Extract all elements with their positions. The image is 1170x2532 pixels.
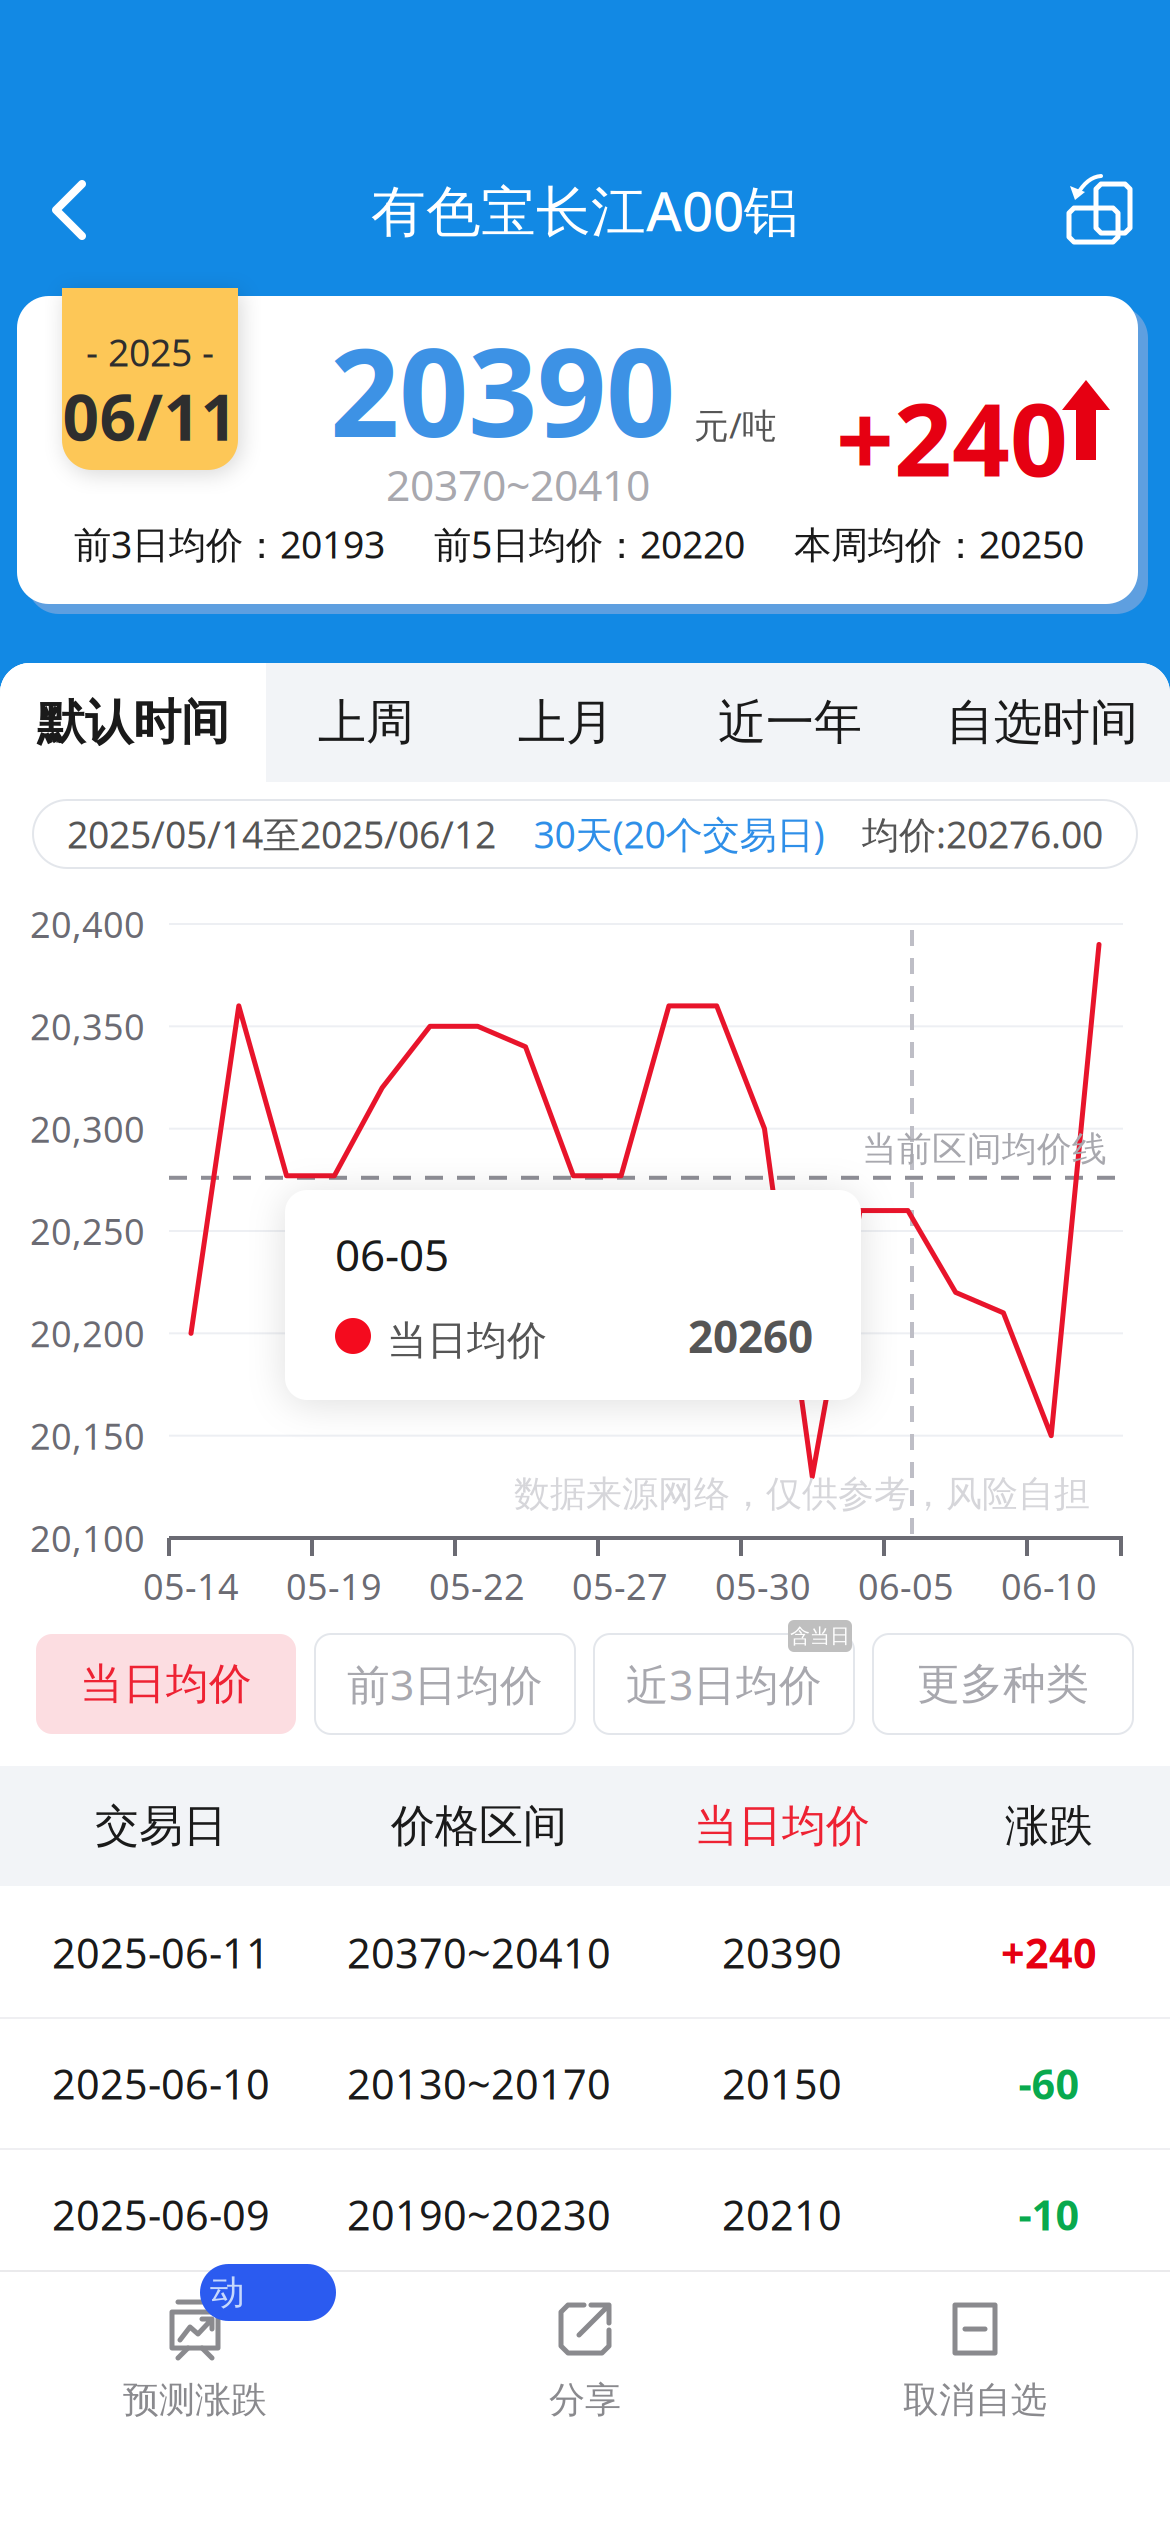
button[interactable]: 近一年: [666, 663, 914, 782]
staticText: 2025/05/14至2025/06/12: [67, 809, 496, 859]
staticText: 20150: [722, 2056, 842, 2111]
staticText: 默认时间: [37, 693, 229, 752]
staticText: 当日均价: [387, 1316, 547, 1365]
staticText: 05-30: [715, 1562, 811, 1610]
staticText: 涨跌: [1005, 1799, 1093, 1853]
staticText: 当日均价: [80, 1658, 252, 1710]
staticText: 20370~20410: [386, 456, 650, 513]
staticText: 有色宝长江A00铝: [371, 174, 799, 246]
staticText: 2025-06-09: [52, 2187, 270, 2242]
staticText: 含当日: [790, 1624, 850, 1648]
staticText: 当前区间均价线: [862, 1128, 1107, 1171]
staticText: 20130~20170: [347, 2056, 611, 2111]
staticText: 价格区间: [391, 1799, 567, 1853]
staticText: 取消自选: [903, 2378, 1047, 2422]
button[interactable]: 2025-06-11: [0, 1888, 1170, 2019]
button[interactable]: 上月: [466, 663, 666, 782]
staticText: 20260: [688, 1307, 813, 1365]
staticText: 动: [210, 2271, 245, 2314]
button[interactable]: 取消自选: [780, 2296, 1170, 2476]
staticText: 元/吨: [694, 402, 777, 448]
staticText: 20,250: [30, 1207, 145, 1255]
staticText: 20210: [722, 2187, 842, 2242]
staticText: 近3日均价: [626, 1656, 822, 1712]
staticText: 20370~20410: [347, 1925, 611, 1980]
button[interactable]: 自选时间: [914, 663, 1170, 782]
staticText: 上月: [518, 693, 614, 752]
button[interactable]: 上周: [266, 663, 466, 782]
button[interactable]: 分享: [390, 2296, 780, 2476]
staticText: 均价:20276.00: [862, 809, 1103, 859]
button[interactable]: 2025-06-10: [0, 2019, 1170, 2150]
staticText: -10: [1018, 2187, 1079, 2242]
staticText: 上周: [318, 693, 414, 752]
staticText: 更多种类: [917, 1658, 1089, 1710]
staticText: 2025-06-11: [52, 1925, 270, 1980]
button[interactable]: 近3日均价: [594, 1634, 854, 1734]
button[interactable]: 2025-06-09: [0, 2150, 1170, 2281]
staticText: 2025-06-10: [52, 2056, 270, 2111]
staticText: 20,100: [30, 1514, 145, 1562]
staticText: 前5日均价：20220: [434, 519, 745, 569]
staticText: 交易日: [95, 1799, 227, 1853]
staticText: 分享: [549, 2378, 621, 2422]
staticText: 06-10: [1001, 1562, 1097, 1610]
staticText: 20390: [330, 309, 675, 470]
staticText: 06-05: [335, 1225, 449, 1283]
staticText: 20,400: [30, 900, 145, 948]
staticText: 本周均价：20250: [794, 519, 1084, 569]
staticText: 当日均价: [694, 1799, 870, 1853]
staticText: 20,150: [30, 1412, 145, 1460]
staticText: +240: [836, 370, 1068, 505]
staticText: - 2025 -: [86, 327, 214, 377]
staticText: 20390: [722, 1925, 842, 1980]
staticText: 06-05: [858, 1562, 954, 1610]
staticText: 近一年: [718, 693, 862, 752]
staticText: 30天(20个交易日): [533, 809, 824, 859]
staticText: -60: [1018, 2056, 1079, 2111]
staticText: 05-22: [429, 1562, 525, 1610]
staticText: 20,300: [30, 1105, 145, 1153]
staticText: 前3日均价：20193: [74, 519, 385, 569]
staticText: 数据来源网络，仅供参考，风险自担: [514, 1472, 1090, 1516]
button[interactable]: 当日均价: [36, 1634, 296, 1734]
button[interactable]: 更多种类: [873, 1634, 1133, 1734]
staticText: 自选时间: [946, 693, 1138, 752]
staticText: 20190~20230: [347, 2187, 611, 2242]
staticText: 20,350: [30, 1002, 145, 1050]
staticText: 05-19: [286, 1562, 382, 1610]
staticText: 20,200: [30, 1309, 145, 1357]
staticText: 05-14: [143, 1562, 239, 1610]
staticText: 06/11: [62, 373, 237, 458]
button[interactable]: 前3日均价: [315, 1634, 575, 1734]
button[interactable]: Rotate screen: [1030, 150, 1170, 270]
button[interactable]: Back: [0, 150, 140, 270]
staticText: +240: [1001, 1925, 1097, 1980]
staticText: 前3日均价: [347, 1656, 543, 1712]
staticText: 05-27: [572, 1562, 668, 1610]
button[interactable]: 默认时间: [0, 663, 266, 782]
staticText: 预测涨跌: [123, 2378, 267, 2422]
button[interactable]: 预测涨跌: [0, 2296, 390, 2476]
